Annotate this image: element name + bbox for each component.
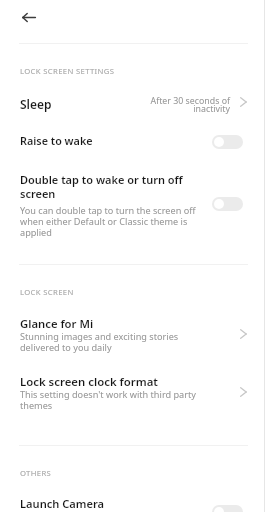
button[interactable]: Glance for Mi: [0, 310, 266, 358]
button[interactable]: Toggle: [212, 135, 243, 149]
button[interactable]: Raise to wake: [0, 126, 266, 156]
staticText: After 30 seconds of inactivity: [150, 95, 230, 115]
staticText: LOCK SCREEN: [20, 287, 74, 297]
button[interactable]: Double tap to wake or turn off screen: [0, 166, 266, 244]
button[interactable]: Lock screen clock format: [0, 368, 266, 416]
staticText: OTHERS: [20, 468, 52, 478]
staticText: Double tap to wake or turn off screen: [20, 172, 201, 201]
button[interactable]: Toggle: [212, 505, 243, 512]
button[interactable]: Back: [13, 1, 45, 33]
staticText: Sleep: [20, 96, 52, 112]
staticText: This setting doesn't work with third par…: [20, 388, 200, 412]
staticText: Stunning images and exciting stories del…: [20, 330, 188, 354]
staticText: LOCK SCREEN SETTINGS: [20, 66, 115, 76]
staticText: You can double tap to turn the screen of…: [20, 204, 201, 239]
button[interactable]: Launch Camera: [0, 489, 266, 510]
staticText: Raise to wake: [20, 133, 93, 148]
button[interactable]: Toggle: [212, 197, 243, 211]
staticText: Lock screen clock format: [20, 374, 158, 390]
button[interactable]: Sleep: [0, 88, 266, 120]
staticText: Launch Camera: [20, 496, 105, 511]
staticText: Glance for Mi: [20, 316, 94, 331]
